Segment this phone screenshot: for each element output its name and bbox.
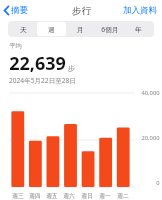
staticText: 週四 — [29, 192, 41, 199]
staticText: 週一 — [99, 192, 111, 199]
button[interactable]: 月 — [66, 22, 95, 36]
staticText: 週六 — [63, 192, 75, 199]
staticText: 年 — [135, 25, 142, 34]
staticText: 週五 — [46, 192, 58, 199]
staticText: 6個月 — [101, 25, 119, 34]
staticText: 步 — [68, 64, 75, 73]
staticText: 步行 — [72, 5, 91, 17]
staticText: 週日 — [81, 192, 93, 199]
staticText: 40,000 — [141, 89, 160, 97]
staticText: 0 — [156, 179, 160, 187]
other: Back — [3, 5, 10, 16]
staticText: 摘要 — [11, 5, 28, 16]
staticText: 天 — [20, 25, 27, 34]
button[interactable]: 加入資料 — [118, 2, 162, 19]
staticText: 2024年5月22日至28日 — [9, 76, 76, 85]
staticText: 20,000 — [141, 134, 160, 142]
staticText: 週 — [48, 25, 55, 34]
button[interactable]: 天 — [9, 22, 37, 36]
staticText: 加入資料 — [123, 5, 157, 16]
button[interactable]: 年 — [124, 22, 153, 36]
staticText: 月 — [77, 25, 84, 34]
button[interactable]: 週 — [37, 22, 66, 36]
staticText: 平均 — [9, 42, 22, 50]
staticText: 週二 — [117, 192, 129, 199]
button[interactable]: Back — [0, 2, 32, 19]
staticText: 22,639 — [9, 51, 66, 76]
staticText: 週三 — [12, 192, 24, 199]
button[interactable]: 6個月 — [95, 22, 124, 36]
